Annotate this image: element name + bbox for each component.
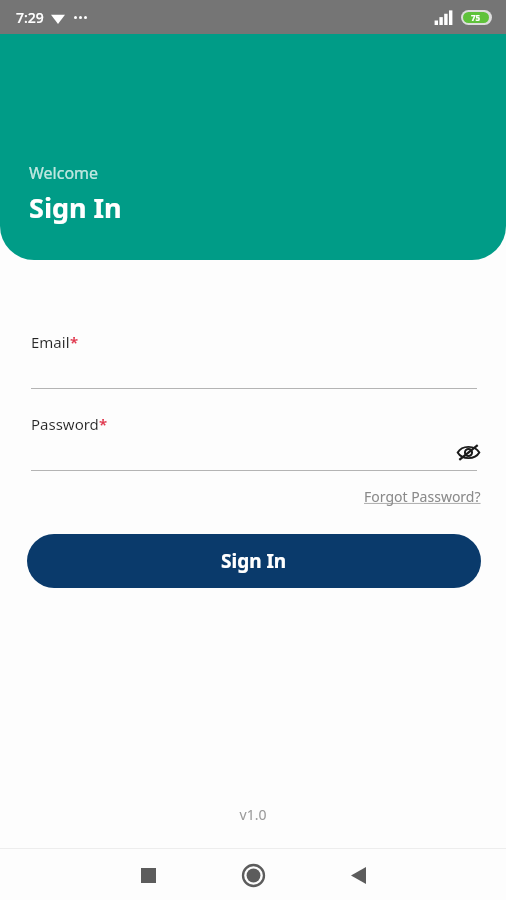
staticText: Email	[31, 332, 70, 352]
button[interactable]: Back	[341, 858, 375, 892]
button[interactable]: Sign In	[27, 534, 481, 588]
staticText: 75	[471, 12, 481, 23]
staticText: 7:29	[16, 8, 44, 27]
staticText: Sign In	[29, 189, 122, 226]
staticText: Forgot Password?	[364, 487, 481, 506]
staticText: *	[99, 414, 108, 434]
staticText: Password	[31, 414, 99, 434]
staticText: Welcome	[29, 162, 99, 184]
button[interactable]: Forgot Password?	[364, 487, 481, 506]
button[interactable]: Recent apps	[131, 858, 165, 892]
staticText: Sign In	[221, 548, 287, 574]
staticText: v1.0	[0, 805, 506, 824]
staticText: *	[70, 332, 79, 352]
button[interactable]: Home	[234, 856, 272, 894]
button[interactable]: Show password	[451, 435, 485, 469]
